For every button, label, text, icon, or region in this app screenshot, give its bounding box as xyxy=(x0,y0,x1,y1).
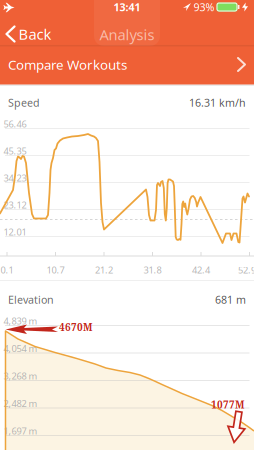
staticText: 16.31 km/h xyxy=(189,95,246,110)
staticText: 4670M xyxy=(59,320,93,334)
button[interactable]: Compare Workouts xyxy=(0,45,254,83)
staticText: 12.01 xyxy=(3,226,26,238)
staticText: 31.8 xyxy=(143,264,161,276)
staticText: 4,839 m xyxy=(3,315,37,327)
staticText: 13:41 xyxy=(113,0,140,14)
staticText: 681 m xyxy=(215,292,246,307)
staticText: 93% xyxy=(193,0,214,14)
staticText: Back xyxy=(18,24,51,44)
staticText: Compare Workouts xyxy=(8,56,127,73)
staticText: 56.46 xyxy=(3,118,26,130)
staticText: 3,268 m xyxy=(3,370,37,382)
staticText: 4,054 m xyxy=(3,342,37,355)
staticText: 2,482 m xyxy=(3,397,37,410)
staticText: 21.2 xyxy=(95,264,113,276)
staticText: 34.23 xyxy=(3,172,26,184)
button[interactable]: Back xyxy=(6,24,51,44)
staticText: 0.1 xyxy=(0,264,13,276)
staticText: Analysis xyxy=(99,25,154,44)
staticText: 1,697 m xyxy=(3,425,37,437)
staticText: Elevation xyxy=(8,292,54,307)
staticText: 10.7 xyxy=(46,264,64,276)
staticText: 45.35 xyxy=(3,145,26,157)
staticText: 1077M xyxy=(211,398,245,411)
staticText: 23.12 xyxy=(3,199,26,211)
staticText: 42.4 xyxy=(192,264,210,276)
staticText: Speed xyxy=(8,95,40,110)
staticText: 52.9 xyxy=(238,264,254,276)
